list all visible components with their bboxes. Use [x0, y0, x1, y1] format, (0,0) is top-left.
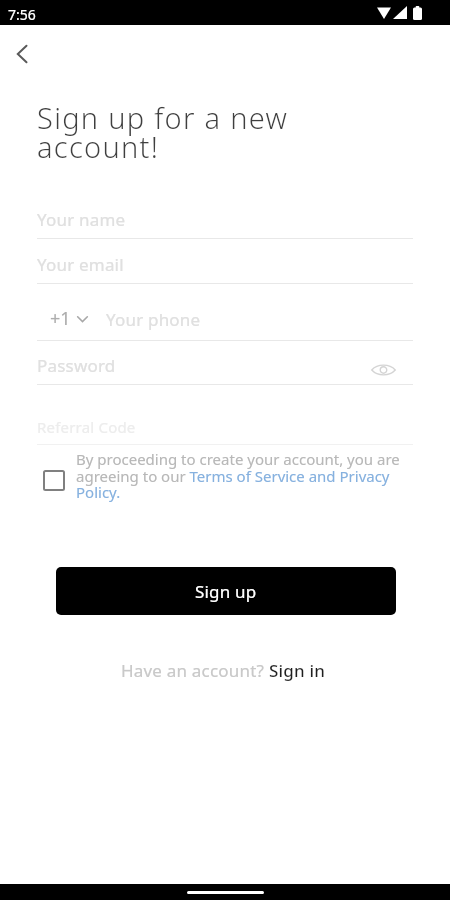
staticText: Sign in [269, 659, 326, 682]
staticText: +1 [50, 306, 71, 331]
staticText: Your email [37, 253, 124, 276]
button[interactable]: Sign in [269, 659, 326, 682]
staticText: Your name [37, 208, 126, 231]
staticText: Have an account? [121, 659, 269, 682]
button[interactable]: By proceeding to create your account, yo… [37, 449, 417, 507]
staticText: By proceeding to create your account, yo… [76, 449, 416, 502]
staticText: Password [37, 354, 116, 377]
staticText: Sign up [195, 580, 257, 603]
staticText: 7:56 [8, 5, 36, 24]
staticText: Referral Code [37, 417, 136, 437]
staticText: Sign up for a new account! [37, 98, 312, 166]
button[interactable]: Back [0, 32, 44, 76]
button[interactable]: Sign up [56, 567, 396, 615]
button[interactable]: +1 [50, 306, 88, 331]
button[interactable]: Show password [368, 355, 398, 385]
staticText: Your phone [106, 308, 201, 331]
